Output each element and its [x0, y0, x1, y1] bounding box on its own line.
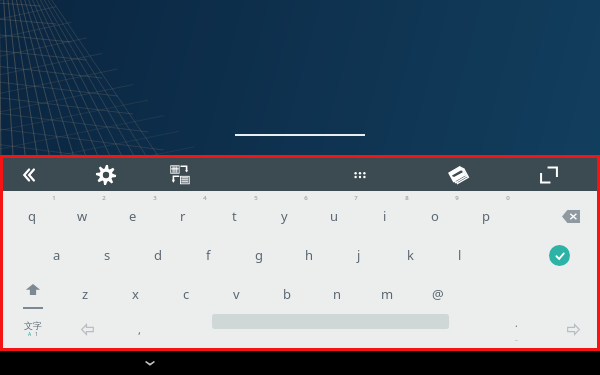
button[interactable]: x — [113, 277, 157, 311]
button[interactable]: Move cursor right — [551, 313, 595, 345]
button[interactable]: i — [363, 199, 407, 233]
button[interactable]: b — [265, 277, 309, 311]
staticText: b — [283, 285, 291, 303]
staticText: f — [206, 246, 211, 264]
button[interactable]: Collapse — [10, 158, 42, 191]
staticText: i — [383, 207, 387, 225]
button[interactable]: @ — [416, 277, 460, 311]
button[interactable]: l — [438, 238, 482, 272]
staticText: w — [77, 207, 88, 225]
button[interactable]: Move cursor left — [65, 313, 109, 345]
button[interactable]: v — [214, 277, 258, 311]
button[interactable]: s — [85, 238, 129, 272]
button[interactable]: w — [60, 199, 104, 233]
staticText: d — [154, 246, 162, 264]
button[interactable]: d — [136, 238, 180, 272]
staticText: t — [232, 207, 237, 225]
staticText: 3 — [149, 194, 161, 202]
button[interactable]: g — [237, 238, 281, 272]
staticText: 2 — [98, 194, 110, 202]
button[interactable]: z — [63, 277, 107, 311]
button[interactable]: k — [388, 238, 432, 272]
staticText: 7 — [350, 194, 362, 202]
staticText: 1 — [48, 194, 60, 202]
staticText: A — [28, 331, 32, 338]
staticText: g — [255, 246, 263, 264]
staticText: _ — [515, 334, 518, 342]
staticText: 0 — [502, 194, 514, 202]
staticText: r — [180, 207, 186, 225]
staticText: c — [183, 285, 190, 303]
button[interactable]: j — [337, 238, 381, 272]
staticText: 9 — [451, 194, 463, 202]
staticText: p — [482, 207, 490, 225]
staticText: 4 — [199, 194, 211, 202]
button[interactable]: e — [111, 199, 155, 233]
staticText: u — [330, 207, 339, 225]
button[interactable]: 文字 — [11, 313, 55, 345]
button[interactable]: y — [262, 199, 306, 233]
staticText: 文字 — [24, 320, 42, 331]
staticText: q — [28, 207, 36, 225]
button[interactable]: . — [499, 313, 533, 345]
button[interactable]: Backspace — [549, 199, 593, 233]
staticText: v — [233, 285, 240, 303]
button[interactable]: t — [212, 199, 256, 233]
button[interactable]: o — [413, 199, 457, 233]
staticText: y — [281, 207, 288, 225]
button[interactable]: q — [10, 199, 54, 233]
staticText: 8 — [401, 194, 413, 202]
button[interactable]: Enter — [537, 238, 581, 272]
button[interactable]: Keyboard layout — [164, 158, 196, 191]
button[interactable]: , — [117, 313, 161, 345]
button[interactable]: a — [35, 238, 79, 272]
button[interactable]: c — [164, 277, 208, 311]
button[interactable]: Shift — [11, 277, 55, 315]
staticText: . — [515, 316, 518, 330]
button[interactable]: Hide keyboard — [138, 351, 162, 375]
staticText: 6 — [300, 194, 312, 202]
staticText: e — [129, 207, 137, 225]
staticText: @ — [432, 285, 444, 303]
staticText: , — [138, 322, 141, 337]
button[interactable]: Themes — [441, 158, 473, 191]
staticText: a — [53, 246, 61, 264]
button[interactable]: f — [186, 238, 230, 272]
staticText: k — [407, 246, 414, 264]
button[interactable]: More keys — [344, 158, 376, 191]
staticText: x — [132, 285, 139, 303]
staticText: 1 — [35, 331, 38, 338]
button[interactable]: Settings — [90, 158, 122, 191]
staticText: j — [357, 246, 361, 264]
staticText: l — [458, 246, 462, 264]
button[interactable]: Resize — [533, 158, 565, 191]
button[interactable]: p — [464, 199, 508, 233]
button[interactable]: u — [312, 199, 356, 233]
button[interactable]: r — [161, 199, 205, 233]
staticText: s — [104, 246, 111, 264]
staticText: 5 — [250, 194, 262, 202]
staticText: o — [431, 207, 439, 225]
staticText: m — [381, 285, 394, 303]
staticText: z — [82, 285, 89, 303]
staticText: n — [333, 285, 342, 303]
button[interactable]: n — [315, 277, 359, 311]
staticText: h — [305, 246, 314, 264]
button[interactable]: m — [365, 277, 409, 311]
button[interactable]: h — [287, 238, 331, 272]
